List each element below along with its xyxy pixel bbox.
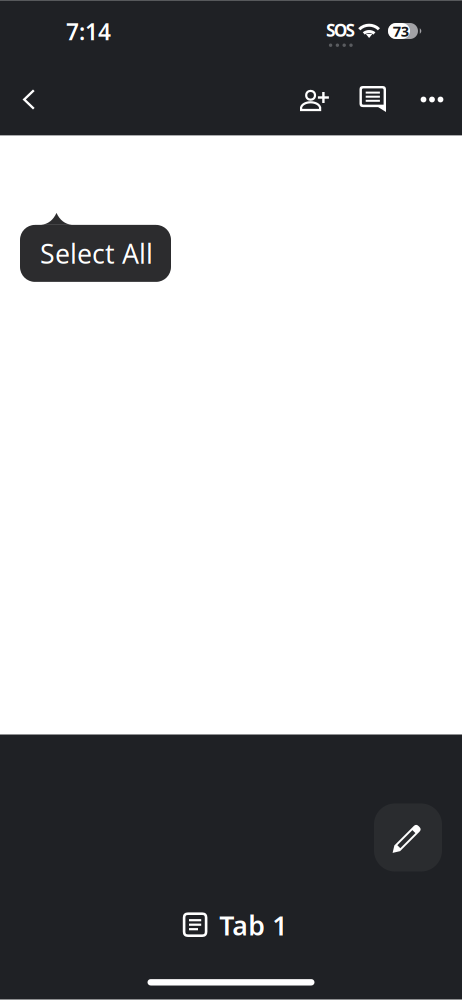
button[interactable]: More options bbox=[408, 74, 456, 124]
staticText: Select All bbox=[40, 236, 153, 271]
button[interactable]: Add people bbox=[291, 75, 339, 125]
button[interactable]: Back bbox=[6, 74, 52, 124]
staticText: Tab 1 bbox=[219, 907, 287, 943]
button[interactable]: Select All bbox=[20, 212, 171, 282]
button[interactable]: Tab 1 bbox=[179, 903, 283, 947]
staticText: 73 bbox=[393, 21, 409, 41]
button[interactable]: Messages bbox=[349, 74, 397, 124]
button[interactable]: Compose bbox=[374, 803, 442, 871]
staticText: SOS bbox=[326, 18, 356, 41]
staticText: 7:14 bbox=[66, 16, 111, 47]
